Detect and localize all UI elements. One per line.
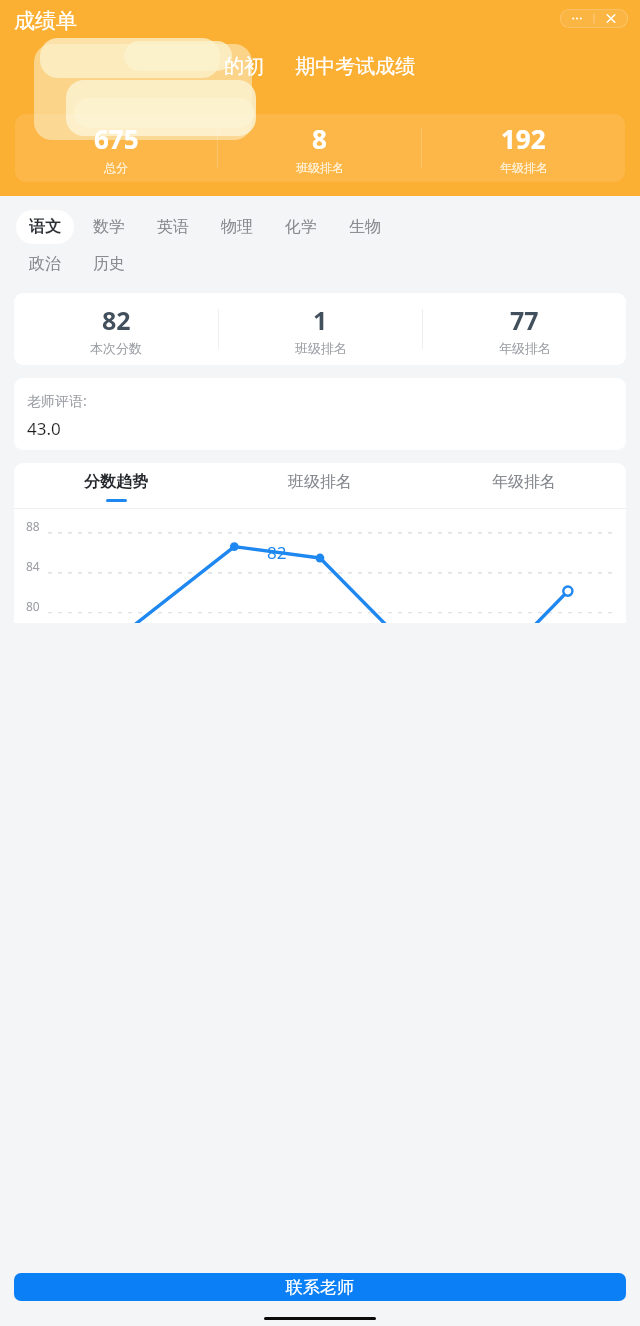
staticText: 43.0	[27, 417, 61, 440]
button[interactable]: 物理	[208, 210, 266, 244]
staticText: 80	[26, 598, 40, 614]
staticText: 联系老师	[286, 1277, 354, 1298]
staticText: 年级排名	[499, 340, 551, 356]
staticText: 的初 期中考试成绩	[224, 52, 416, 79]
staticText: 77	[510, 303, 539, 337]
staticText: 88	[26, 518, 40, 534]
staticText: 物理	[221, 217, 253, 237]
staticText: 本次分数	[90, 340, 142, 356]
staticText: 8	[312, 121, 327, 156]
button[interactable]: 年级排名	[422, 463, 626, 502]
staticText: 政治	[29, 254, 61, 274]
staticText: 英语	[157, 217, 189, 237]
button[interactable]: 班级排名	[218, 463, 422, 502]
button[interactable]: 语文	[16, 210, 74, 244]
staticText: 总分	[104, 160, 128, 175]
staticText: 生物	[349, 217, 381, 237]
staticText: 84	[26, 558, 40, 574]
staticText: 班级排名	[288, 472, 352, 492]
button[interactable]: 英语	[144, 210, 202, 244]
button[interactable]: 分数趋势	[14, 463, 218, 502]
staticText: 数学	[93, 217, 125, 237]
button[interactable]: 历史	[80, 247, 138, 281]
staticText: 675	[94, 121, 139, 156]
staticText: 班级排名	[296, 160, 344, 175]
button[interactable]: 82	[14, 293, 626, 365]
staticText: 年级排名	[500, 160, 548, 175]
staticText: 192	[501, 121, 546, 156]
button[interactable]: 生物	[336, 210, 394, 244]
staticText: 1	[313, 303, 328, 337]
staticText: 语文	[29, 217, 61, 237]
staticText: 化学	[285, 217, 317, 237]
staticText: 班级排名	[295, 340, 347, 356]
staticText: 老师评语:	[27, 391, 87, 410]
button[interactable]: 老师评语:	[14, 378, 626, 450]
staticText: 82	[267, 541, 287, 564]
staticText: 成绩单	[14, 8, 77, 34]
button[interactable]: 政治	[16, 247, 74, 281]
button[interactable]: 化学	[272, 210, 330, 244]
button[interactable]: More and close	[560, 9, 628, 28]
button[interactable]: 联系老师	[14, 1273, 626, 1301]
staticText: 历史	[93, 254, 125, 274]
button[interactable]: 数学	[80, 210, 138, 244]
staticText: 年级排名	[492, 472, 556, 492]
staticText: 82	[102, 303, 131, 337]
staticText: 分数趋势	[84, 472, 148, 492]
